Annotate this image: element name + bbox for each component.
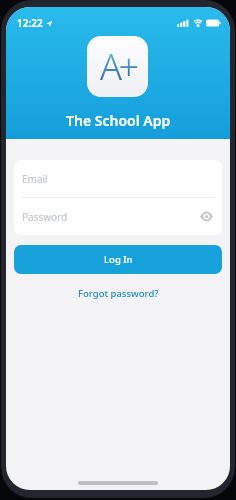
- button[interactable]: Log In: [14, 245, 222, 274]
- button[interactable]: Email: [14, 160, 222, 197]
- staticText: Forgot password?: [78, 287, 159, 300]
- staticText: 12:22: [17, 16, 43, 30]
- staticText: Email: [22, 172, 48, 186]
- button[interactable]: Password: [14, 198, 222, 235]
- button[interactable]: Forgot password?: [78, 287, 159, 300]
- staticText: Log In: [104, 253, 133, 266]
- staticText: A+: [100, 42, 136, 91]
- staticText: The School App: [66, 111, 171, 130]
- staticText: Password: [22, 210, 68, 224]
